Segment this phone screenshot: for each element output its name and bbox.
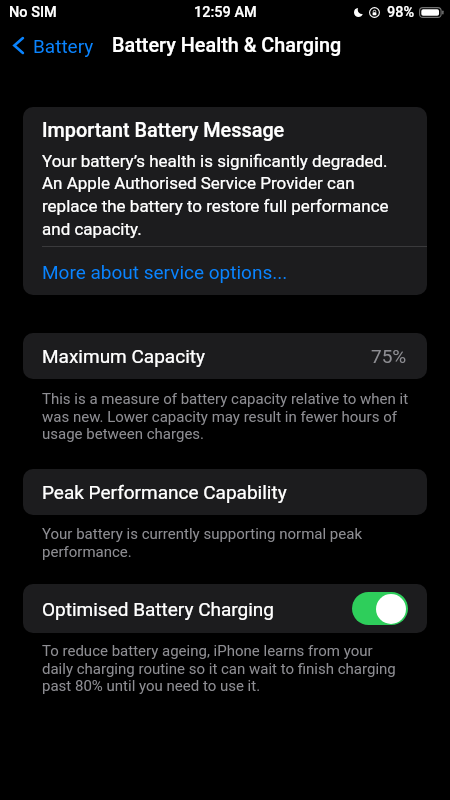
staticText: Peak Performance Capability [42,481,287,503]
staticText: Your battery’s health is significantly d… [42,151,402,239]
staticText: No SIM [9,4,57,21]
button[interactable]: Peak Performance Capability [23,469,427,515]
staticText: 12:59 AM [194,4,257,21]
staticText: Optimised Battery Charging [42,598,275,620]
staticText: Battery [33,35,94,57]
staticText: To reduce battery ageing, iPhone learns … [42,642,422,694]
staticText: Battery Health & Charging [112,34,342,57]
staticText: Maximum Capacity [42,345,205,367]
staticText: Important Battery Message [42,119,285,142]
staticText: 75% [371,345,407,367]
button[interactable]: Optimised Battery Charging, on [352,592,408,625]
button[interactable]: Maximum Capacity [23,333,427,379]
staticText: 98% [387,4,415,21]
button[interactable]: More about service options... [23,247,427,295]
staticText: More about service options... [42,261,288,283]
button[interactable]: Back to Battery [0,29,104,61]
staticText: Your battery is currently supporting nor… [42,525,422,560]
staticText: This is a measure of battery capacity re… [42,390,422,442]
